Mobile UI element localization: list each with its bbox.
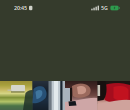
button[interactable]: Photo, hands at a counter bbox=[65, 81, 97, 110]
button[interactable]: Photo, blue interior bbox=[32, 81, 65, 110]
staticText: 5G bbox=[101, 4, 108, 12]
button[interactable]: Photo, person in a red shirt bbox=[97, 81, 130, 110]
button[interactable]: Photo, trailer on a lawn bbox=[0, 81, 32, 110]
staticText: 20:45 bbox=[14, 4, 27, 12]
